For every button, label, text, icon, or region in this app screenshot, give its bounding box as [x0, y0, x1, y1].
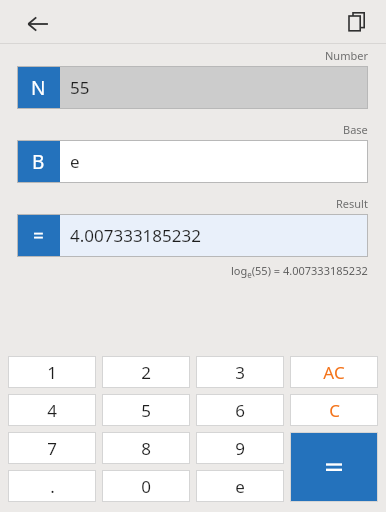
- button[interactable]: 7: [8, 432, 96, 464]
- staticText: B: [32, 149, 45, 175]
- button[interactable]: 1: [8, 356, 96, 388]
- button[interactable]: B: [17, 140, 368, 183]
- staticText: Base: [343, 122, 368, 137]
- staticText: 2: [141, 361, 151, 384]
- button[interactable]: 6: [196, 394, 284, 426]
- staticText: 0: [141, 475, 151, 498]
- staticText: 1: [47, 361, 57, 384]
- staticText: C: [329, 399, 340, 422]
- staticText: Number: [325, 48, 368, 63]
- staticText: 9: [235, 437, 245, 460]
- staticText: 3: [235, 361, 245, 384]
- button[interactable]: Back: [20, 6, 56, 42]
- staticText: e: [70, 150, 80, 173]
- staticText: N: [31, 75, 46, 101]
- staticText: =: [33, 223, 44, 249]
- button[interactable]: 3: [196, 356, 284, 388]
- button[interactable]: 4: [8, 394, 96, 426]
- button[interactable]: 0: [102, 470, 190, 502]
- staticText: loge(55) = 4.007333185232: [231, 263, 368, 280]
- button[interactable]: =: [17, 214, 368, 257]
- staticText: e: [235, 475, 245, 498]
- button[interactable]: e: [196, 470, 284, 502]
- button[interactable]: Equals: [290, 432, 378, 502]
- button[interactable]: 2: [102, 356, 190, 388]
- button[interactable]: 8: [102, 432, 190, 464]
- button[interactable]: C: [290, 394, 378, 426]
- button[interactable]: 9: [196, 432, 284, 464]
- staticText: .: [50, 475, 55, 498]
- staticText: 8: [141, 437, 151, 460]
- staticText: 5: [141, 399, 151, 422]
- staticText: AC: [323, 361, 345, 384]
- staticText: Result: [336, 196, 368, 211]
- staticText: 4: [47, 399, 57, 422]
- staticText: 6: [235, 399, 245, 422]
- staticText: 55: [70, 76, 90, 99]
- button[interactable]: 5: [102, 394, 190, 426]
- button[interactable]: Copy: [340, 5, 374, 39]
- button[interactable]: N: [17, 66, 368, 109]
- button[interactable]: .: [8, 470, 96, 502]
- button[interactable]: AC: [290, 356, 378, 388]
- staticText: 4.007333185232: [70, 224, 201, 247]
- staticText: 7: [47, 437, 57, 460]
